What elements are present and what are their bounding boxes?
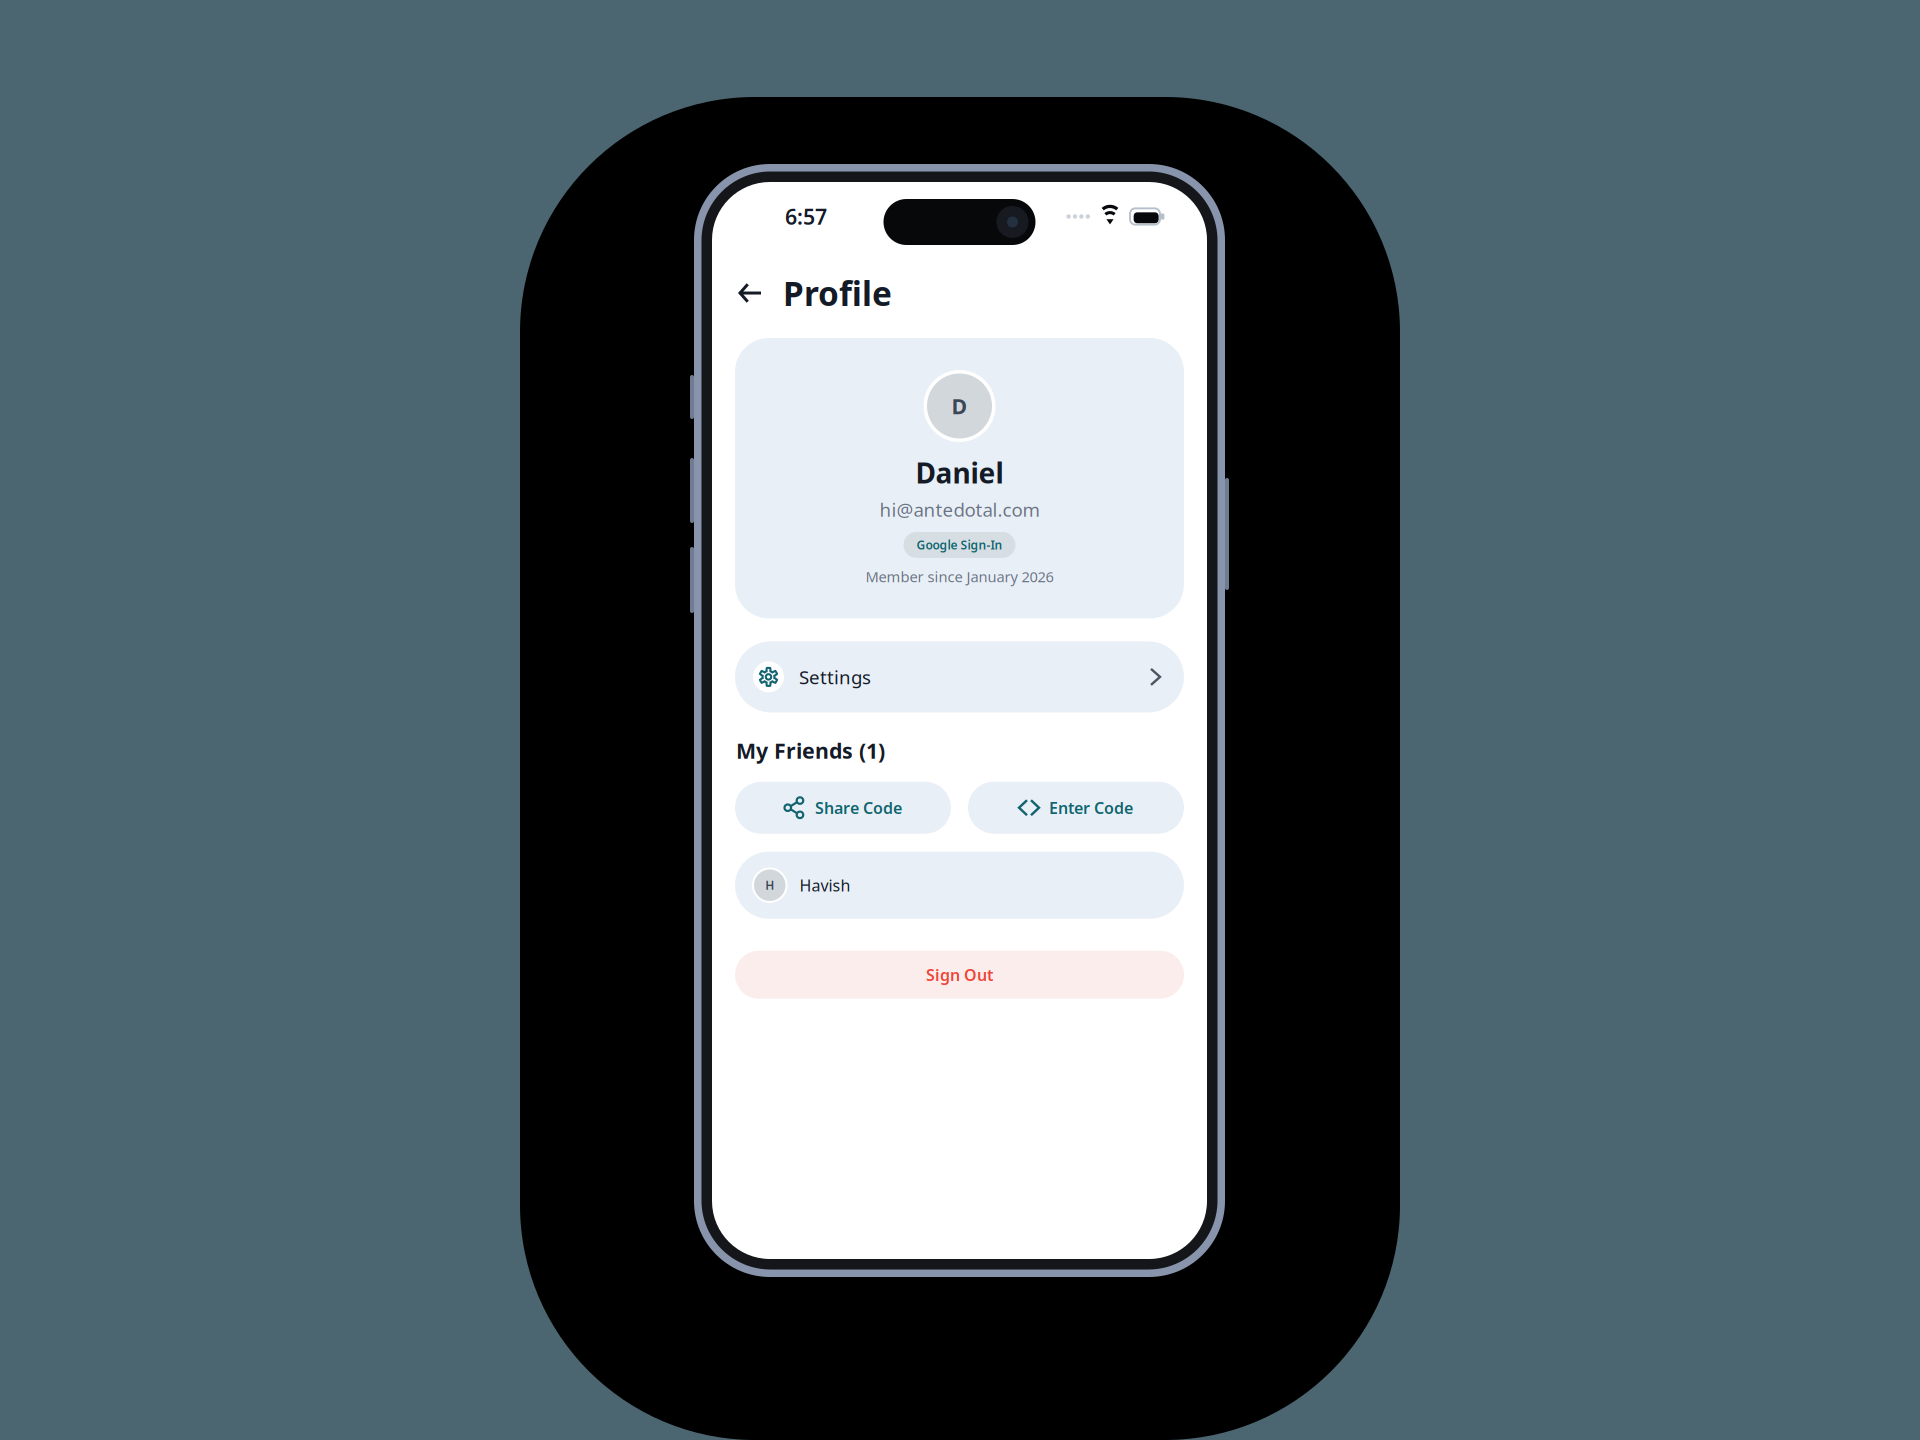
staticText: hi@antedotal.com: [879, 497, 1039, 522]
staticText: Daniel: [915, 454, 1003, 491]
staticText: Profile: [783, 271, 892, 315]
staticText: Member since January 2026: [865, 567, 1053, 586]
staticText: Sign Out: [926, 964, 993, 985]
button[interactable]: H: [735, 852, 1184, 919]
staticText: My Friends (1): [736, 736, 885, 765]
staticText: H: [765, 877, 774, 893]
staticText: 6:57: [785, 202, 827, 231]
staticText: Havish: [799, 875, 850, 896]
staticText: Share Code: [815, 797, 902, 818]
staticText: Enter Code: [1049, 797, 1133, 818]
staticText: Google Sign-In: [916, 537, 1002, 553]
button[interactable]: Settings: [735, 641, 1184, 712]
staticText: Settings: [799, 664, 871, 689]
button[interactable]: Enter Code: [968, 782, 1184, 834]
button[interactable]: Sign Out: [735, 951, 1184, 999]
staticText: D: [951, 392, 967, 420]
button[interactable]: Share Code: [735, 782, 951, 834]
button[interactable]: Back: [730, 269, 770, 316]
